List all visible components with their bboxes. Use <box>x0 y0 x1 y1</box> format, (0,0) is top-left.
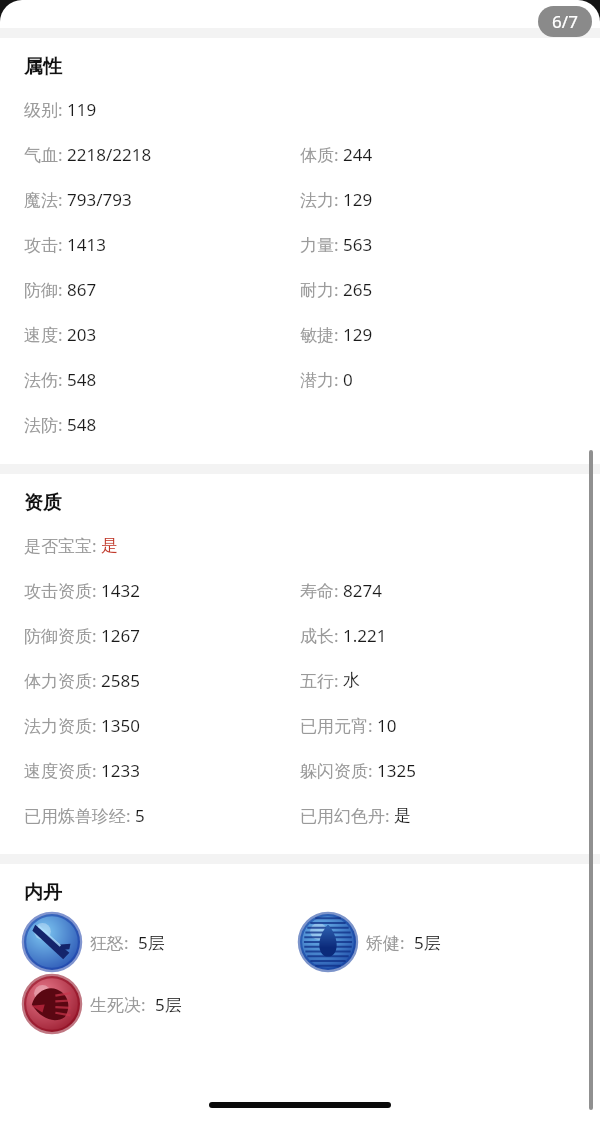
staticText: 防御资质: <box>24 624 101 647</box>
staticText: 速度资质: <box>24 759 101 782</box>
staticText: 10 <box>377 714 397 737</box>
staticText: 是 <box>101 535 118 556</box>
other: 矫健内丹 <box>300 914 356 970</box>
button[interactable]: 体力资质: <box>24 658 140 703</box>
staticText: 内丹 <box>24 881 62 905</box>
staticText: 体力资质: <box>24 669 101 692</box>
staticText: 五行: <box>300 669 343 692</box>
staticText: 1413 <box>67 233 106 256</box>
staticText: 203 <box>67 323 97 346</box>
staticText: 1.221 <box>343 624 387 647</box>
button[interactable]: 是否宝宝: <box>24 523 118 568</box>
button[interactable]: 耐力: <box>300 267 373 312</box>
staticText: 生死决: <box>90 993 155 1016</box>
button[interactable]: 已用炼兽珍经: <box>24 793 145 838</box>
staticText: 867 <box>67 278 97 301</box>
other: 狂怒内丹 <box>24 914 80 970</box>
staticText: 潜力: <box>300 368 343 391</box>
button[interactable]: 寿命: <box>300 568 382 613</box>
staticText: 寿命: <box>300 579 343 602</box>
staticText: 8274 <box>343 579 382 602</box>
button[interactable]: 法防: <box>24 402 97 447</box>
staticText: 气血: <box>24 143 67 166</box>
staticText: 129 <box>343 323 373 346</box>
button[interactable]: 潜力: <box>300 357 353 402</box>
button[interactable]: 生死决内丹 <box>24 973 182 1035</box>
other: 生死决内丹 <box>24 976 80 1032</box>
button[interactable]: 躲闪资质: <box>300 748 416 793</box>
button[interactable]: 防御: <box>24 267 97 312</box>
button[interactable]: 级别: <box>24 87 97 132</box>
button[interactable]: 力量: <box>300 222 373 267</box>
staticText: 265 <box>343 278 373 301</box>
button[interactable]: 魔法: <box>24 177 132 222</box>
staticText: 资质 <box>24 491 62 515</box>
staticText: 速度: <box>24 323 67 346</box>
staticText: 5层 <box>414 931 441 954</box>
staticText: 1233 <box>101 759 140 782</box>
staticText: 0 <box>343 368 353 391</box>
staticText: 129 <box>343 188 373 211</box>
staticText: 是 <box>394 805 411 826</box>
staticText: 耐力: <box>300 278 343 301</box>
staticText: 体质: <box>300 143 343 166</box>
staticText: 敏捷: <box>300 323 343 346</box>
button[interactable]: 法力: <box>300 177 373 222</box>
button[interactable]: 速度资质: <box>24 748 140 793</box>
staticText: 1432 <box>101 579 140 602</box>
staticText: 已用炼兽珍经: <box>24 804 135 827</box>
staticText: 力量: <box>300 233 343 256</box>
staticText: 5 <box>135 804 145 827</box>
staticText: 攻击: <box>24 233 67 256</box>
staticText: 2585 <box>101 669 140 692</box>
button[interactable]: 成长: <box>300 613 387 658</box>
staticText: 548 <box>67 413 97 436</box>
button[interactable]: 气血: <box>24 132 152 177</box>
staticText: 躲闪资质: <box>300 759 377 782</box>
staticText: 水 <box>343 670 360 691</box>
button[interactable]: 已用元宵: <box>300 703 397 748</box>
button[interactable]: 防御资质: <box>24 613 140 658</box>
button[interactable]: 矫健内丹 <box>300 911 441 973</box>
staticText: 防御: <box>24 278 67 301</box>
button[interactable]: 已用幻色丹: <box>300 793 411 838</box>
staticText: 法防: <box>24 413 67 436</box>
staticText: 548 <box>67 368 97 391</box>
staticText: 级别: <box>24 98 67 121</box>
staticText: 矫健: <box>366 931 414 954</box>
staticText: 法力: <box>300 188 343 211</box>
staticText: 狂怒: <box>90 931 138 954</box>
staticText: 攻击资质: <box>24 579 101 602</box>
button[interactable]: 法力资质: <box>24 703 140 748</box>
button[interactable]: 五行: <box>300 658 360 703</box>
staticText: 魔法: <box>24 188 67 211</box>
staticText: 成长: <box>300 624 343 647</box>
staticText: 2218/2218 <box>67 143 152 166</box>
staticText: 法力资质: <box>24 714 101 737</box>
staticText: 1267 <box>101 624 140 647</box>
button[interactable]: 体质: <box>300 132 373 177</box>
staticText: 1350 <box>101 714 140 737</box>
button[interactable]: 6/7 <box>538 6 592 37</box>
staticText: 6/7 <box>552 10 578 33</box>
staticText: 属性 <box>24 55 62 79</box>
button[interactable]: 敏捷: <box>300 312 373 357</box>
staticText: 5层 <box>138 931 165 954</box>
staticText: 119 <box>67 98 97 121</box>
staticText: 793/793 <box>67 188 132 211</box>
staticText: 5层 <box>155 993 182 1016</box>
button[interactable]: 速度: <box>24 312 97 357</box>
button[interactable]: 攻击资质: <box>24 568 140 613</box>
button[interactable]: 攻击: <box>24 222 106 267</box>
staticText: 法伤: <box>24 368 67 391</box>
staticText: 已用幻色丹: <box>300 804 394 827</box>
button[interactable]: 法伤: <box>24 357 97 402</box>
staticText: 563 <box>343 233 373 256</box>
staticText: 已用元宵: <box>300 714 377 737</box>
button[interactable]: 狂怒内丹 <box>24 911 165 973</box>
staticText: 244 <box>343 143 373 166</box>
staticText: 是否宝宝: <box>24 534 101 557</box>
staticText: 1325 <box>377 759 416 782</box>
